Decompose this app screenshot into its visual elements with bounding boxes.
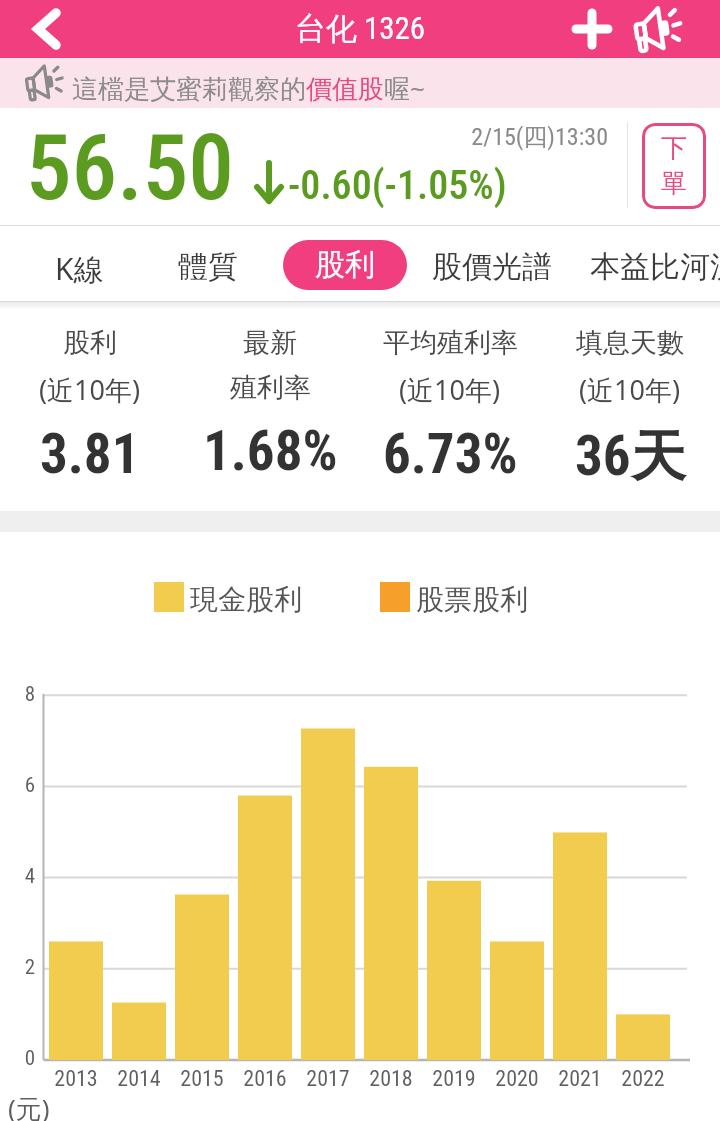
button[interactable] bbox=[40, 236, 130, 294]
staticText: 36天 bbox=[575, 422, 686, 491]
staticText: 2015 bbox=[170, 1066, 234, 1092]
staticText: 下 單 bbox=[661, 132, 687, 200]
staticText: 2017 bbox=[296, 1066, 360, 1092]
staticText: 3.81 bbox=[40, 422, 140, 486]
button[interactable] bbox=[625, 5, 685, 53]
button[interactable] bbox=[568, 5, 616, 53]
staticText: 股價光譜 bbox=[432, 248, 552, 286]
staticText: 2021 bbox=[548, 1066, 612, 1092]
button[interactable] bbox=[420, 236, 550, 294]
staticText: 現金股利 bbox=[190, 582, 302, 617]
staticText: 平均殖利率 bbox=[383, 326, 518, 360]
staticText: (近10年) bbox=[399, 371, 501, 408]
staticText: 2 bbox=[5, 955, 35, 980]
staticText: (近10年) bbox=[39, 371, 141, 408]
staticText: 殖利率 bbox=[230, 371, 311, 405]
staticText: (元) bbox=[8, 1090, 50, 1121]
staticText: (近10年) bbox=[579, 371, 681, 408]
staticText: 本益比河流圖 bbox=[590, 248, 720, 286]
staticText: 2013 bbox=[44, 1066, 108, 1092]
staticText: 2016 bbox=[233, 1066, 297, 1092]
staticText: 填息天數 bbox=[576, 326, 684, 360]
staticText: 8 bbox=[5, 682, 35, 707]
staticText: 1.68% bbox=[203, 419, 338, 483]
staticText: 股票股利 bbox=[416, 582, 528, 617]
staticText: 6.73% bbox=[383, 422, 518, 486]
button[interactable] bbox=[578, 236, 720, 294]
staticText: 股利 bbox=[63, 326, 117, 360]
staticText: 2019 bbox=[422, 1066, 486, 1092]
staticText: 2018 bbox=[359, 1066, 423, 1092]
staticText: 56.50 bbox=[26, 115, 234, 222]
staticText: K線 bbox=[55, 248, 104, 289]
staticText: 2022 bbox=[611, 1066, 675, 1092]
staticText: 這檔是艾蜜莉觀察的價值股喔~ bbox=[72, 70, 425, 106]
staticText: 2014 bbox=[107, 1066, 171, 1092]
staticText: -0.60(-1.05%) bbox=[288, 162, 507, 209]
staticText: 4 bbox=[5, 864, 35, 889]
staticText: 2/15(四)13:30 bbox=[358, 122, 608, 152]
staticText: 2020 bbox=[485, 1066, 549, 1092]
staticText: 股利 bbox=[315, 246, 375, 284]
staticText: 最新 bbox=[243, 326, 297, 360]
staticText: 台化 1326 bbox=[0, 9, 720, 48]
staticText: 0 bbox=[5, 1046, 35, 1071]
button[interactable] bbox=[35, 5, 83, 53]
staticText: 6 bbox=[5, 773, 35, 798]
button[interactable] bbox=[165, 236, 255, 294]
button[interactable]: 下 單 bbox=[642, 123, 706, 209]
staticText: 體質 bbox=[178, 248, 238, 286]
button[interactable]: 股利 bbox=[283, 240, 407, 290]
